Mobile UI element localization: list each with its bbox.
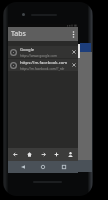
- button[interactable]: Forward: [37, 148, 50, 161]
- button[interactable]: Account: [64, 148, 77, 161]
- button[interactable]: Home: [23, 148, 36, 161]
- button[interactable]: Home: [37, 161, 49, 173]
- button[interactable]: Back: [17, 161, 29, 173]
- button[interactable]: New tab: [50, 148, 63, 161]
- staticText: https://www.google.com: [20, 54, 57, 58]
- staticText: Tabs: [11, 29, 26, 39]
- button[interactable]: Recents: [58, 161, 70, 173]
- button[interactable]: More options: [68, 27, 78, 41]
- button[interactable]: Google: [8, 46, 78, 58]
- button[interactable]: Close tab: [69, 46, 78, 58]
- button[interactable]: Close tab: [69, 59, 78, 71]
- button[interactable]: Back: [9, 148, 22, 161]
- staticText: https://m.facebook.com/?_rdr: [20, 67, 65, 71]
- staticText: https://m.facebook.com: [20, 60, 68, 66]
- button[interactable]: https://m.facebook.com: [8, 59, 78, 71]
- staticText: Google: [20, 47, 35, 53]
